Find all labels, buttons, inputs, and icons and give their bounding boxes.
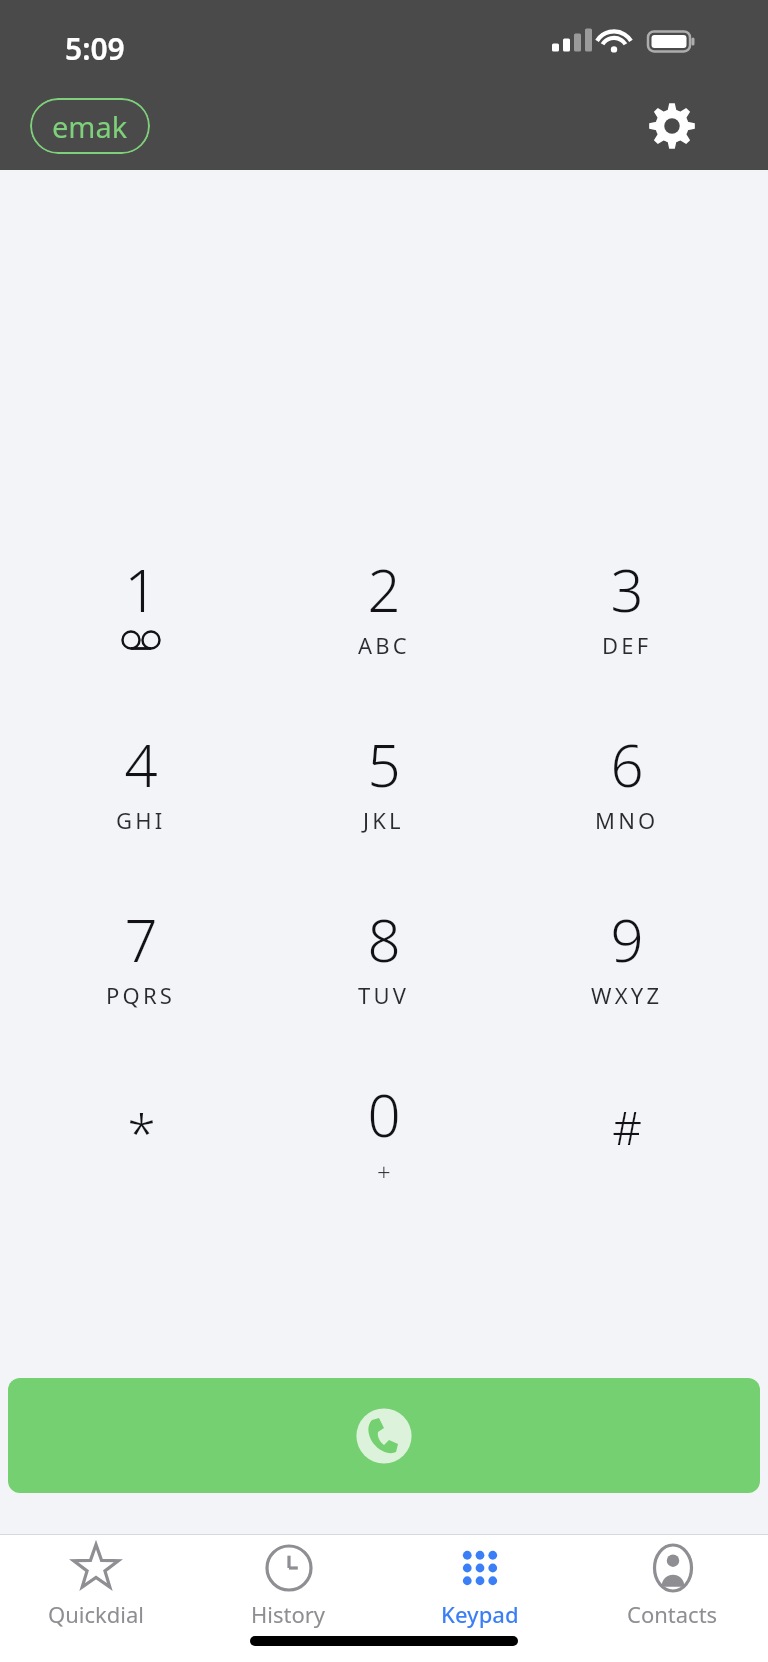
- button[interactable]: emak: [30, 98, 150, 154]
- button[interactable]: 1: [20, 540, 262, 715]
- staticText: 4: [124, 725, 158, 801]
- button[interactable]: 5: [262, 715, 505, 890]
- staticText: PQRS: [106, 980, 176, 1010]
- button[interactable]: Keypad: [384, 1535, 576, 1628]
- staticText: History: [251, 1599, 326, 1628]
- staticText: TUV: [358, 980, 410, 1010]
- button[interactable]: History: [192, 1535, 384, 1628]
- staticText: ABC: [358, 630, 410, 660]
- staticText: 3: [610, 550, 644, 626]
- staticText: 6: [610, 725, 644, 801]
- staticText: GHI: [116, 805, 166, 835]
- staticText: #: [612, 1096, 642, 1159]
- button[interactable]: 8: [262, 890, 505, 1065]
- staticText: WXYZ: [591, 980, 663, 1010]
- button[interactable]: 9: [505, 890, 748, 1065]
- staticText: 7: [124, 900, 158, 976]
- staticText: JKL: [363, 805, 404, 835]
- staticText: emak: [52, 107, 128, 146]
- button[interactable]: 6: [505, 715, 748, 890]
- staticText: Contacts: [627, 1599, 718, 1628]
- button[interactable]: 3: [505, 540, 748, 715]
- button[interactable]: Call: [8, 1378, 760, 1493]
- staticText: MNO: [595, 805, 659, 835]
- button[interactable]: Quickdial: [0, 1535, 192, 1628]
- staticText: DEF: [602, 630, 652, 660]
- staticText: Quickdial: [48, 1599, 144, 1628]
- button[interactable]: 0: [262, 1065, 505, 1240]
- staticText: 2: [367, 550, 401, 626]
- button[interactable]: *: [20, 1065, 262, 1240]
- staticText: 8: [367, 900, 401, 976]
- staticText: 1: [124, 550, 158, 626]
- staticText: +: [377, 1155, 391, 1188]
- staticText: *: [127, 1096, 156, 1167]
- button[interactable]: 2: [262, 540, 505, 715]
- button[interactable]: 4: [20, 715, 262, 890]
- staticText: 9: [610, 900, 644, 976]
- button[interactable]: Contacts: [576, 1535, 768, 1628]
- button[interactable]: 7: [20, 890, 262, 1065]
- staticText: 5: [367, 725, 401, 801]
- button[interactable]: #: [505, 1065, 748, 1240]
- staticText: 5:09: [65, 28, 125, 69]
- staticText: Keypad: [441, 1599, 519, 1628]
- button[interactable]: Settings: [636, 90, 708, 162]
- staticText: 0: [367, 1075, 401, 1151]
